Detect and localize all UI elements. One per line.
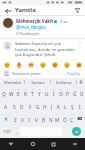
button[interactable]: 8 — [50, 86, 57, 99]
button[interactable]: Filter replies — [73, 6, 82, 15]
staticText: , — [16, 129, 18, 135]
staticText: 0 — [67, 88, 69, 91]
staticText: M — [55, 117, 60, 124]
staticText: T — [31, 91, 34, 98]
button[interactable]: C — [26, 112, 33, 125]
button[interactable]: X — [19, 112, 26, 125]
button[interactable]: J — [48, 99, 55, 112]
button[interactable]: Tamam — [25, 78, 50, 86]
staticText: Kullanıcı — [56, 80, 72, 85]
button[interactable]: Ş — [69, 99, 76, 112]
staticText: Yanıtlanıyor — [20, 31, 40, 36]
button[interactable]: Z — [11, 112, 19, 125]
staticText: Yanıtla — [15, 6, 36, 14]
staticText: Ğ — [73, 91, 77, 98]
staticText: F — [29, 104, 32, 111]
staticText: 9 — [60, 88, 62, 91]
staticText: O — [59, 91, 63, 98]
button[interactable]: 5 — [29, 86, 36, 99]
button[interactable]: Ü — [78, 86, 85, 99]
button[interactable]: Emoji — [39, 61, 46, 68]
staticText: = — [37, 101, 39, 104]
button[interactable]: Change keyboard — [64, 138, 85, 150]
button[interactable]: 0 — [64, 86, 71, 99]
button[interactable]: Comma — [13, 126, 20, 137]
button[interactable]: N — [47, 112, 54, 125]
button[interactable]: Ö — [61, 112, 68, 125]
staticText: D — [20, 104, 24, 111]
button[interactable]: Voice input — [77, 78, 85, 86]
button[interactable]: 3 — [15, 86, 22, 99]
button[interactable]: Kullanıcı — [51, 78, 76, 86]
staticText: . — [65, 129, 67, 135]
staticText: Ö — [63, 117, 67, 124]
button[interactable]: 7 — [43, 86, 50, 99]
button[interactable]: Emoji — [27, 61, 34, 68]
button[interactable]: M — [54, 112, 61, 125]
staticText: Ü — [80, 91, 84, 98]
button[interactable]: Paylaş — [66, 70, 82, 78]
staticText: Paylaş — [67, 71, 81, 77]
button[interactable]: Mehmetçik Vakfı — [0, 16, 85, 38]
button[interactable]: A — [2, 99, 10, 112]
button[interactable]: Emoji — [63, 61, 70, 68]
staticText: Y — [38, 91, 41, 98]
button[interactable]: 9 — [57, 86, 64, 99]
staticText: W — [9, 91, 14, 98]
button[interactable]: Ç — [68, 112, 75, 125]
staticText: A — [4, 104, 8, 111]
button[interactable]: Yanıtınızı yazın — [12, 69, 66, 78]
button[interactable]: Ğ — [71, 86, 78, 99]
button[interactable]: S — [10, 99, 18, 112]
button[interactable]: Period — [62, 126, 69, 137]
staticText: R — [24, 91, 27, 98]
button[interactable]: B — [40, 112, 47, 125]
button[interactable]: Emoji — [15, 61, 22, 68]
button[interactable]: İ — [76, 99, 83, 112]
staticText: I — [53, 91, 55, 98]
staticText: X — [21, 117, 24, 124]
button[interactable]: K — [55, 99, 62, 112]
staticText: S — [13, 104, 16, 111]
staticText: J — [51, 104, 53, 111]
staticText: İ — [79, 104, 81, 111]
button[interactable]: Backspace — [75, 112, 84, 125]
staticText: Ş — [71, 104, 74, 111]
button[interactable]: Sabahın huzurlu en çok hüzünlüsü, dünde … — [0, 39, 85, 60]
button[interactable]: H — [41, 99, 48, 112]
button[interactable]: Home — [22, 138, 43, 150]
button[interactable]: 2 — [8, 86, 15, 99]
staticText: P — [66, 91, 69, 98]
button[interactable]: Back — [3, 6, 12, 15]
button[interactable]: - — [26, 99, 34, 112]
staticText: 7 — [46, 88, 48, 91]
staticText: N — [49, 117, 53, 124]
staticText: K — [57, 104, 60, 111]
staticText: @mcv_dergisi — [16, 24, 46, 30]
button[interactable]: 4 — [22, 86, 29, 99]
staticText: 5 — [32, 88, 34, 91]
button[interactable]: = — [34, 99, 41, 112]
button[interactable]: + — [18, 99, 26, 112]
button[interactable]: 1 — [0, 86, 8, 99]
button[interactable]: Send — [72, 127, 81, 136]
staticText: Z — [14, 117, 17, 124]
button[interactable]: Back — [0, 138, 22, 150]
button[interactable]: Emoji — [51, 61, 58, 68]
button[interactable]: ?123 — [1, 126, 13, 137]
staticText: Merhaba — [4, 80, 21, 85]
staticText: - — [30, 101, 31, 104]
button[interactable]: L — [62, 99, 69, 112]
button[interactable]: Shift — [1, 112, 11, 125]
staticText: Q — [2, 91, 6, 98]
staticText: 8 — [53, 88, 55, 91]
button[interactable]: Emoji — [75, 61, 82, 68]
button[interactable]: V — [33, 112, 40, 125]
button[interactable]: More options — [78, 41, 82, 45]
button[interactable]: 6 — [36, 86, 43, 99]
button[interactable]: Merhaba — [0, 78, 24, 86]
button[interactable]: Recent apps — [43, 138, 64, 150]
staticText: L — [64, 104, 67, 111]
button[interactable]: Emoji — [3, 61, 10, 68]
